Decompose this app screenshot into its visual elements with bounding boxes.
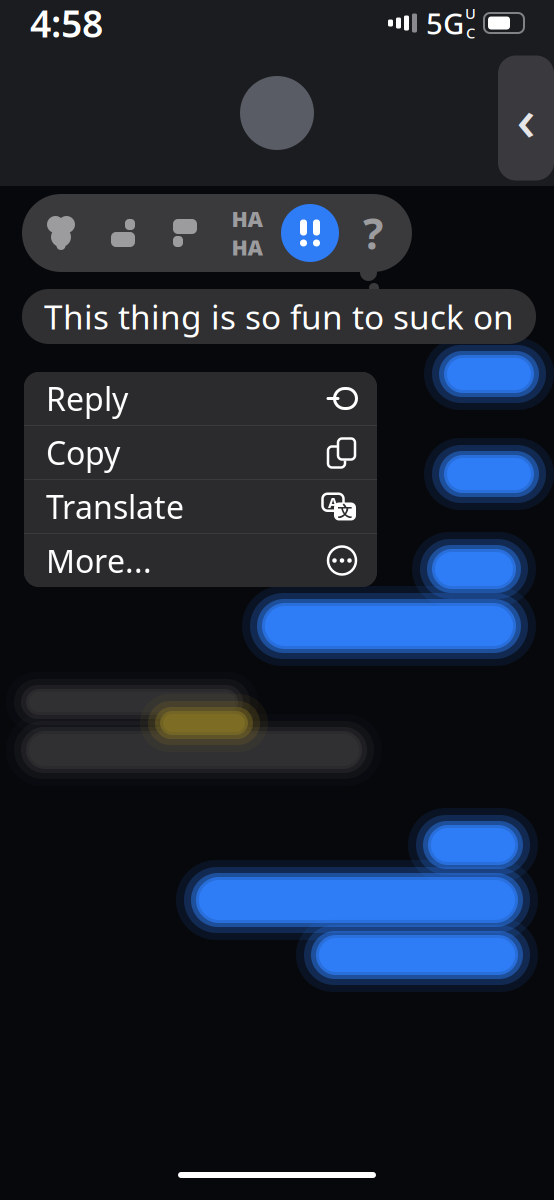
button[interactable]: Like <box>92 199 154 267</box>
button[interactable]: Dislike <box>154 199 216 267</box>
staticText: ? <box>363 205 383 261</box>
button[interactable]: More... <box>24 534 377 587</box>
staticText: 文 <box>337 502 352 520</box>
staticText: 5G <box>426 3 464 42</box>
staticText: More... <box>46 539 152 582</box>
staticText: Translate <box>46 485 184 528</box>
staticText: C <box>466 23 475 42</box>
staticText: U <box>465 3 476 23</box>
staticText: 4:58 <box>30 0 103 48</box>
button[interactable]: Love <box>30 199 92 267</box>
staticText: A <box>328 492 338 512</box>
button[interactable]: Reply <box>24 372 377 425</box>
staticText: HA <box>231 233 262 261</box>
staticText: Copy <box>46 431 120 474</box>
button[interactable]: Back <box>498 55 554 180</box>
staticText: HA <box>231 205 262 233</box>
button[interactable]: Copy <box>24 426 377 479</box>
button[interactable]: Haha <box>216 199 278 267</box>
button[interactable]: Translate <box>24 480 377 533</box>
staticText: ‹ <box>516 79 535 157</box>
staticText: Reply <box>46 377 128 420</box>
button[interactable]: Question mark <box>342 199 404 267</box>
staticText: This thing is so fun to suck on <box>44 294 514 339</box>
button[interactable]: Exclamation, selected <box>278 199 342 267</box>
